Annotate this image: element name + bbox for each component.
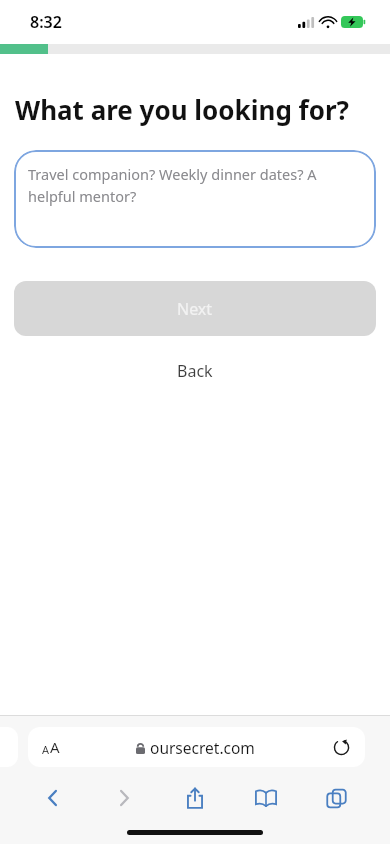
button[interactable]: Share (159, 778, 230, 818)
button[interactable]: A (28, 727, 365, 767)
button[interactable]: Next (14, 281, 376, 336)
button[interactable]: Bookmarks (230, 778, 301, 818)
button[interactable]: Travel companion? Weekly dinner dates? A… (14, 150, 376, 248)
staticText: What are you looking for? (15, 92, 349, 127)
staticText: oursecret.com (150, 737, 255, 758)
staticText: Travel companion? Weekly dinner dates? A… (28, 164, 362, 206)
staticText: Back (177, 360, 213, 382)
button[interactable]: Back (18, 778, 88, 818)
staticText: A (42, 742, 50, 757)
staticText: Next (177, 298, 213, 320)
button[interactable]: Back (163, 355, 227, 387)
staticText: A (50, 737, 60, 757)
button[interactable]: Forward (88, 778, 159, 818)
button[interactable]: Reload (331, 737, 351, 757)
button[interactable]: Tabs (301, 778, 372, 818)
staticText: 8:32 (30, 11, 62, 33)
